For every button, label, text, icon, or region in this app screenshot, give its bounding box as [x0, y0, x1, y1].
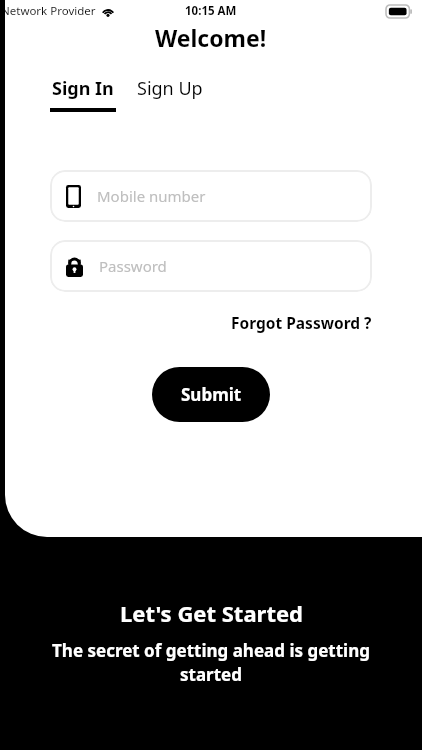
- staticText: Welcome!: [155, 22, 267, 53]
- button[interactable]: Mobile number: [50, 170, 372, 222]
- staticText: Mobile number: [97, 186, 206, 206]
- button[interactable]: Forgot Password ?: [231, 310, 372, 335]
- staticText: Sign In: [52, 76, 114, 101]
- button[interactable]: Submit: [152, 367, 270, 422]
- staticText: Network Provider: [1, 3, 96, 19]
- staticText: Let's Get Started: [120, 598, 303, 628]
- button[interactable]: Password: [50, 240, 372, 292]
- button[interactable]: Sign In: [50, 76, 116, 112]
- staticText: Password: [99, 256, 167, 276]
- staticText: Forgot Password ?: [231, 312, 372, 333]
- button[interactable]: Sign Up: [137, 76, 203, 101]
- staticText: Submit: [181, 383, 242, 406]
- staticText: Sign Up: [137, 76, 203, 101]
- staticText: 10:15 AM: [185, 3, 237, 19]
- staticText: The secret of getting ahead is getting s…: [36, 639, 386, 686]
